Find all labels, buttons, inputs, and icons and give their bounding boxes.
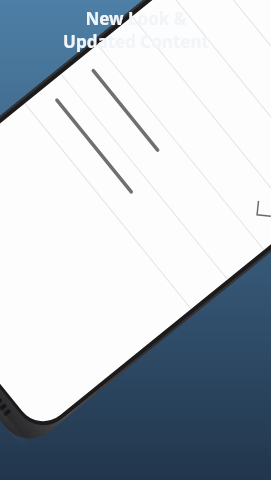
staticText: Updated Content	[63, 30, 209, 53]
staticText: New Look &	[85, 7, 187, 30]
